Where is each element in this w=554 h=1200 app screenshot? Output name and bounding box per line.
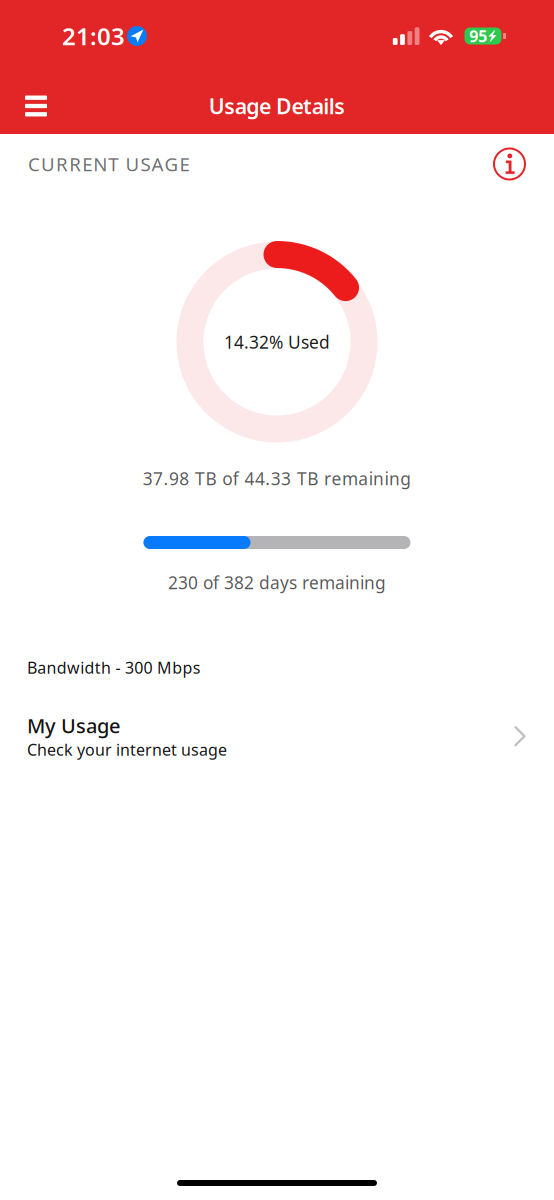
staticText: 21:03 (62, 20, 125, 52)
staticText: 14.32% Used (224, 330, 330, 353)
staticText: My Usage (27, 712, 120, 739)
staticText: Bandwidth - 300 Mbps (27, 657, 201, 678)
staticText: Check your internet usage (27, 739, 227, 760)
staticText: 95 (469, 25, 487, 47)
staticText: Usage Details (209, 92, 345, 120)
staticText: 37.98 TB of 44.33 TB remaining (143, 467, 411, 490)
staticText: CURRENT USAGE (28, 152, 190, 176)
button[interactable]: Menu (12, 84, 60, 128)
button[interactable]: Information (494, 148, 525, 179)
button[interactable]: My Usage (0, 678, 554, 760)
staticText: 230 of 382 days remaining (168, 571, 386, 594)
